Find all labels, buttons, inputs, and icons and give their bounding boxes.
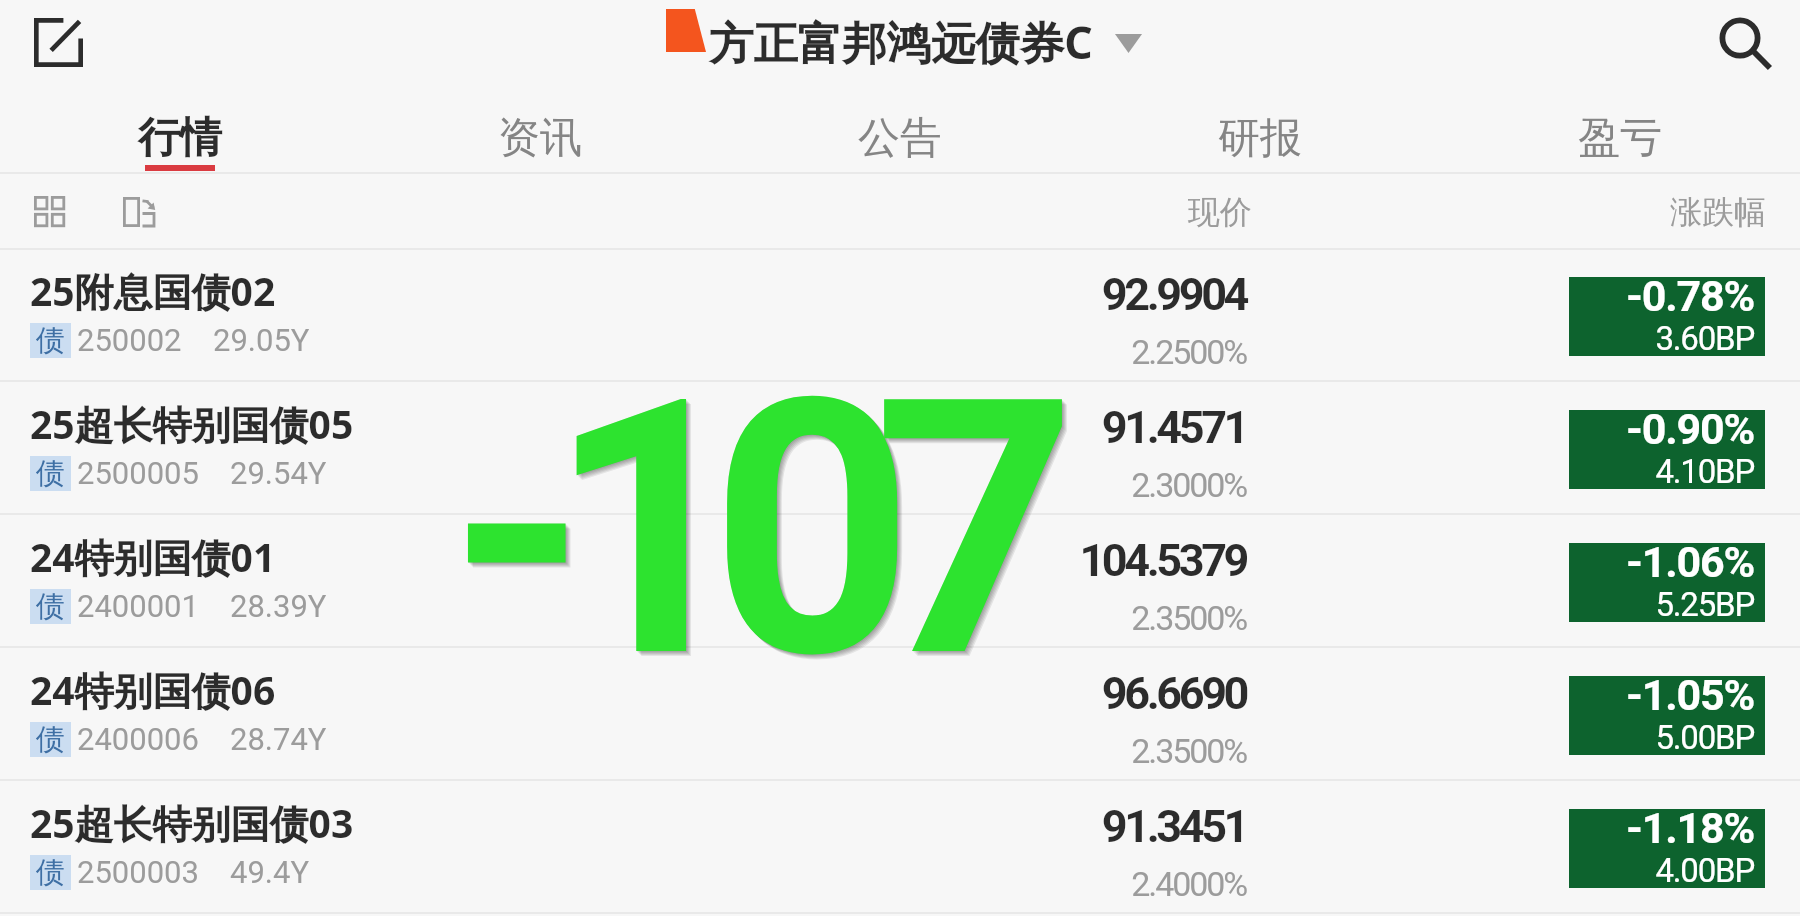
staticText: 4.10BP	[1569, 452, 1754, 491]
staticText: 28.39Y	[230, 588, 327, 624]
staticText: 债	[36, 588, 65, 623]
staticText: -107	[451, 326, 1040, 741]
staticText: 2.3000%	[846, 465, 1246, 505]
staticText: 2400006	[77, 721, 199, 757]
staticText: 2500005	[77, 455, 199, 491]
button[interactable]: 方正富邦鸿远债券C	[709, 6, 1093, 78]
staticText: 5.00BP	[1569, 718, 1754, 757]
button[interactable]: 资讯	[450, 84, 630, 174]
staticText: 5.25BP	[1569, 585, 1754, 624]
button[interactable]: 公告	[810, 84, 990, 174]
staticText: 96.6690	[846, 667, 1246, 720]
staticText: -107	[450, 325, 1039, 740]
button[interactable]: 25超长特别国债03	[0, 781, 1800, 914]
button[interactable]: 行情	[90, 84, 270, 174]
staticText: -107	[452, 327, 1041, 742]
staticText: 29.05Y	[213, 322, 310, 358]
staticText: 涨跌幅	[1670, 192, 1766, 232]
staticText: -107	[453, 328, 1042, 743]
staticText: 2.2500%	[846, 332, 1246, 372]
staticText: 24特别国债06	[30, 663, 276, 716]
button[interactable]: Search	[1700, 1, 1790, 85]
staticText: 方正富邦鸿远债券C	[709, 12, 1093, 73]
staticText: 24特别国债01	[30, 530, 276, 583]
staticText: 49.4Y	[230, 854, 310, 890]
button[interactable]: Choose fund	[1100, 14, 1156, 74]
staticText: 债	[36, 721, 65, 756]
staticText: 91.4571	[846, 401, 1246, 454]
button[interactable]: 24特别国债06	[0, 648, 1800, 781]
staticText: 4.00BP	[1569, 851, 1754, 890]
button[interactable]: 盈亏	[1530, 84, 1710, 174]
staticText: -0.90%	[1569, 404, 1754, 454]
staticText: 现价	[1188, 192, 1252, 232]
staticText: 债	[36, 322, 65, 357]
staticText: 债	[36, 854, 65, 889]
button[interactable]: 25超长特别国债05	[0, 382, 1800, 515]
staticText: 91.3451	[846, 800, 1246, 853]
staticText: 研报	[1218, 112, 1302, 165]
button[interactable]: 24特别国债01	[0, 515, 1800, 648]
staticText: -1.18%	[1569, 803, 1754, 853]
staticText: -1.06%	[1569, 537, 1754, 587]
staticText: 盈亏	[1578, 112, 1662, 165]
staticText: 25超长特别国债03	[30, 796, 354, 849]
staticText: 250002	[77, 322, 182, 358]
staticText: 104.5379	[846, 534, 1246, 587]
staticText: 2.3500%	[846, 598, 1246, 638]
button[interactable]: 研报	[1170, 84, 1350, 174]
button[interactable]: Grid view	[15, 177, 85, 247]
staticText: 2.4000%	[846, 864, 1246, 904]
staticText: 25超长特别国债05	[30, 397, 354, 450]
staticText: 29.54Y	[230, 455, 327, 491]
button[interactable]: Compare	[104, 177, 174, 247]
staticText: -107	[448, 323, 1037, 738]
staticText: 92.9904	[846, 268, 1246, 321]
staticText: -0.78%	[1569, 271, 1754, 321]
staticText: 2.3500%	[846, 731, 1246, 771]
staticText: -107	[448, 323, 1037, 738]
staticText: -107	[449, 324, 1038, 739]
staticText: 债	[36, 455, 65, 490]
staticText: 行情	[138, 112, 222, 165]
staticText: 2500003	[77, 854, 199, 890]
button[interactable]: Edit	[13, 0, 103, 84]
staticText: 公告	[858, 112, 942, 165]
button[interactable]: 25附息国债02	[0, 249, 1800, 382]
staticText: 3.60BP	[1569, 319, 1754, 358]
staticText: 25附息国债02	[30, 264, 276, 317]
staticText: -1.05%	[1569, 670, 1754, 720]
staticText: 2400001	[77, 588, 199, 624]
staticText: 资讯	[498, 112, 582, 165]
staticText: 28.74Y	[230, 721, 327, 757]
